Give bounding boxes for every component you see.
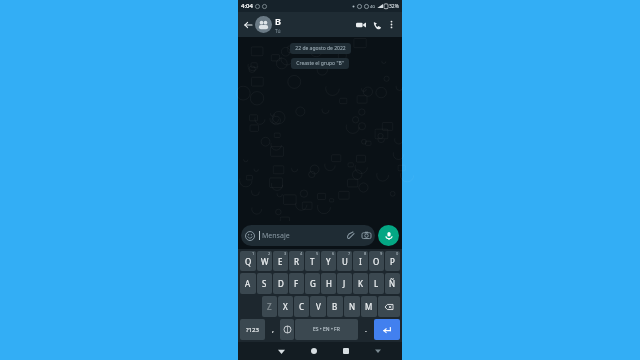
- button[interactable]: T: [305, 251, 320, 271]
- staticText: Tú: [275, 28, 281, 35]
- staticText: M: [365, 301, 373, 312]
- button[interactable]: P: [385, 251, 400, 271]
- staticText: 4: [300, 251, 303, 256]
- staticText: Z: [267, 301, 272, 312]
- staticText: 1: [252, 251, 255, 256]
- staticText: C: [299, 301, 305, 312]
- staticText: D: [278, 278, 284, 289]
- staticText: 4:04: [241, 2, 253, 10]
- button[interactable]: W: [257, 251, 272, 271]
- button[interactable]: B: [327, 296, 343, 317]
- staticText: 3: [284, 251, 287, 256]
- staticText: F: [294, 278, 299, 289]
- button[interactable]: S: [257, 273, 272, 294]
- staticText: 2: [268, 251, 271, 256]
- staticText: O: [373, 256, 380, 267]
- button[interactable]: Period: [359, 319, 373, 340]
- button[interactable]: Mensaje: [241, 225, 375, 246]
- staticText: ?123: [246, 326, 259, 334]
- staticText: R: [294, 256, 299, 267]
- button[interactable]: K: [353, 273, 368, 294]
- staticText: B: [275, 15, 281, 27]
- staticText: W: [261, 256, 269, 267]
- staticText: H: [326, 278, 332, 289]
- button[interactable]: F: [289, 273, 304, 294]
- staticText: 9: [380, 251, 383, 256]
- button[interactable]: Ñ: [385, 273, 400, 294]
- button[interactable]: D: [273, 273, 288, 294]
- staticText: I: [359, 256, 362, 267]
- staticText: S: [262, 278, 267, 289]
- staticText: ,: [272, 325, 274, 335]
- button[interactable]: V: [310, 296, 326, 317]
- button[interactable]: More options: [385, 18, 398, 31]
- staticText: L: [374, 278, 379, 289]
- staticText: T: [310, 256, 315, 267]
- staticText: Ñ: [389, 278, 396, 289]
- button[interactable]: Voice message: [378, 225, 399, 246]
- staticText: Creaste el grupo "B": [296, 60, 344, 67]
- button[interactable]: Voice call: [369, 17, 385, 33]
- staticText: G: [310, 278, 316, 289]
- button[interactable]: Creaste el grupo "B": [291, 58, 349, 69]
- staticText: 0: [396, 251, 399, 256]
- staticText: X: [283, 301, 288, 312]
- button[interactable]: Space: [295, 319, 358, 340]
- button[interactable]: J: [337, 273, 352, 294]
- staticText: E: [278, 256, 283, 267]
- button[interactable]: Q: [240, 251, 256, 271]
- button[interactable]: I: [353, 251, 368, 271]
- staticText: N: [349, 301, 356, 312]
- button[interactable]: Home: [306, 343, 322, 359]
- staticText: Y: [326, 256, 331, 267]
- staticText: K: [358, 278, 363, 289]
- staticText: J: [343, 278, 346, 289]
- button[interactable]: Backspace: [378, 296, 400, 317]
- button[interactable]: C: [294, 296, 309, 317]
- button[interactable]: R: [289, 251, 304, 271]
- staticText: Mensaje: [262, 231, 290, 241]
- staticText: ES • EN • FR: [313, 326, 340, 333]
- staticText: 8: [364, 251, 367, 256]
- button[interactable]: X: [278, 296, 293, 317]
- button[interactable]: M: [361, 296, 377, 317]
- button[interactable]: E: [273, 251, 288, 271]
- staticText: 7: [348, 251, 351, 256]
- button[interactable]: Hide keyboard: [371, 344, 385, 358]
- button[interactable]: Back: [242, 19, 254, 31]
- button[interactable]: Enter: [374, 319, 400, 340]
- button[interactable]: Y: [321, 251, 336, 271]
- button[interactable]: H: [321, 273, 336, 294]
- button[interactable]: Change keyboard: [280, 319, 294, 340]
- staticText: B: [332, 301, 338, 312]
- staticText: 4G: [370, 4, 376, 9]
- button[interactable]: B: [275, 15, 353, 35]
- staticText: Q: [245, 256, 252, 267]
- button[interactable]: L: [369, 273, 384, 294]
- button[interactable]: G: [305, 273, 320, 294]
- button[interactable]: Comma: [266, 319, 279, 340]
- staticText: 32%: [389, 3, 399, 10]
- button[interactable]: N: [344, 296, 360, 317]
- staticText: U: [342, 256, 348, 267]
- button[interactable]: Recents: [338, 343, 354, 359]
- button[interactable]: U: [337, 251, 352, 271]
- button[interactable]: Video call: [353, 17, 369, 33]
- button[interactable]: O: [369, 251, 384, 271]
- staticText: 6: [332, 251, 335, 256]
- button[interactable]: ?123: [240, 319, 265, 340]
- staticText: P: [390, 256, 395, 267]
- button[interactable]: Back: [273, 343, 289, 359]
- staticText: V: [316, 301, 321, 312]
- button[interactable]: Group photo: [255, 16, 272, 33]
- staticText: .: [365, 325, 367, 335]
- staticText: 22 de agosto de 2022: [295, 45, 346, 52]
- staticText: 5: [316, 251, 319, 256]
- button[interactable]: 22 de agosto de 2022: [290, 43, 351, 54]
- staticText: A: [245, 278, 251, 289]
- button[interactable]: Z: [262, 296, 277, 317]
- button[interactable]: A: [240, 273, 256, 294]
